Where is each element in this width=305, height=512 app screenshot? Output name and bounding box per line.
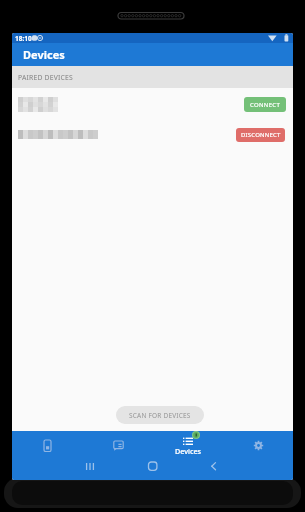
button[interactable]: DISCONNECT bbox=[236, 128, 285, 142]
staticText: Devices bbox=[175, 446, 202, 456]
staticText: Devices bbox=[23, 47, 65, 62]
staticText: DISCONNECT bbox=[241, 131, 281, 139]
button[interactable]: SCAN FOR DEVICES bbox=[116, 406, 204, 424]
button[interactable]: CONNECT bbox=[12, 90, 293, 119]
button[interactable] bbox=[83, 431, 153, 459]
button[interactable] bbox=[12, 459, 105, 480]
staticText: 18:10 bbox=[15, 34, 32, 43]
staticText: SCAN FOR DEVICES bbox=[129, 411, 191, 420]
button[interactable]: Devices bbox=[153, 431, 223, 459]
button[interactable] bbox=[105, 459, 199, 480]
button[interactable] bbox=[199, 459, 293, 480]
button[interactable]: CONNECT bbox=[244, 97, 286, 112]
button[interactable] bbox=[12, 431, 83, 459]
button[interactable] bbox=[223, 431, 293, 459]
button[interactable]: DISCONNECT bbox=[12, 120, 293, 149]
staticText: PAIRED DEVICES bbox=[18, 73, 73, 82]
staticText: CONNECT bbox=[250, 101, 281, 109]
